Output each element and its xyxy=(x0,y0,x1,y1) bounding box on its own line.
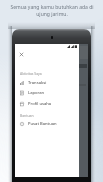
staticText: ujung jarimu. xyxy=(36,11,68,18)
button[interactable]: Profil usaha xyxy=(15,99,79,109)
staticText: Transaksi xyxy=(28,80,47,86)
staticText: Profil usaha xyxy=(28,101,52,107)
staticText: Bantuan xyxy=(20,113,34,118)
staticText: Pusat Bantuan xyxy=(28,121,57,127)
button[interactable]: Pusat Bantuan xyxy=(15,119,79,129)
button[interactable]: Laporan xyxy=(15,88,79,98)
staticText: Semua yang kamu butuhkan ada di xyxy=(10,4,94,11)
staticText: Laporan xyxy=(28,90,45,96)
button[interactable]: Close xyxy=(17,50,25,58)
staticText: Aktivitas Saya xyxy=(20,71,42,76)
button[interactable]: Transaksi xyxy=(15,78,79,88)
